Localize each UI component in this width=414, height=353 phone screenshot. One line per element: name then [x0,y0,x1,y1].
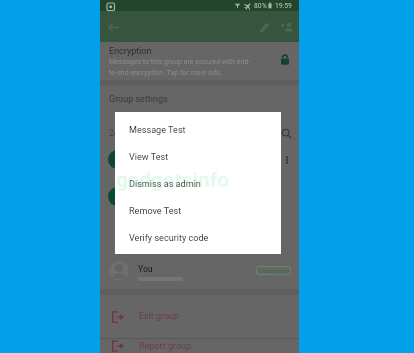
staticText: You [138,264,153,274]
button[interactable]: Edit group [253,16,275,38]
button[interactable]: Dismiss as admin [115,171,281,198]
staticText: Report group [139,341,192,352]
button[interactable]: Add participant [276,16,298,38]
button[interactable]: Remove Test [115,198,281,225]
staticText: Encryption [109,46,152,57]
button[interactable]: 24 participants [100,113,299,141]
staticText: Remove Test [129,206,182,217]
staticText: 19:59 [275,2,292,10]
staticText: Verify security code [129,233,209,244]
staticText: Messages to this group are secured with … [109,58,251,77]
button[interactable]: Back [102,16,124,38]
staticText: Group settings [109,94,168,105]
button[interactable]: Report group [100,339,299,353]
staticText: 80% [254,2,267,10]
button[interactable]: View Test [115,144,281,171]
button[interactable] [100,141,299,178]
button[interactable]: You [100,252,299,289]
other: Search [281,128,292,139]
button[interactable]: Exit group [100,295,299,338]
staticText: Group Admin [258,268,290,274]
staticText: 24 participants [109,128,166,138]
staticText: gadgetsinfo [116,168,230,193]
button[interactable]: Message Test [115,117,281,144]
staticText: Message Test [129,125,186,136]
staticText: Dismiss as admin [129,179,201,190]
button[interactable] [100,178,299,215]
staticText: View Test [129,152,169,163]
button[interactable] [100,215,299,252]
button[interactable]: Verify security code [115,225,281,252]
staticText: Exit group [139,311,180,322]
